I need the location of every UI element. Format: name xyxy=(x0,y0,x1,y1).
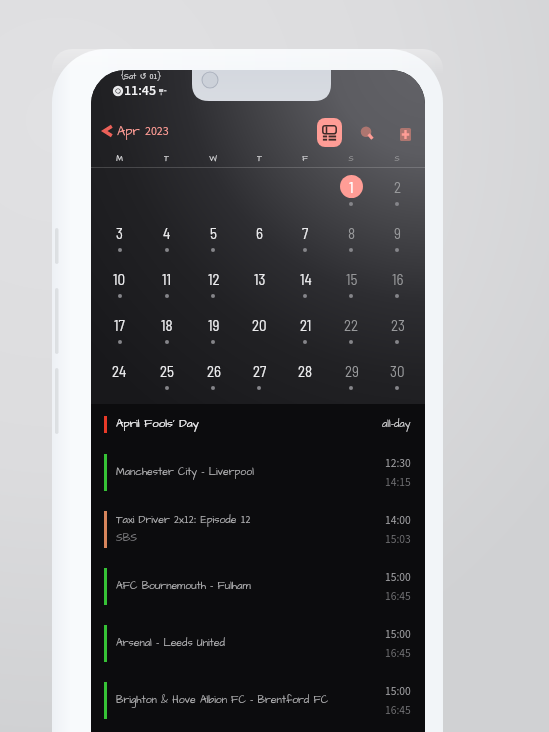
staticText: 27 xyxy=(253,362,267,380)
button[interactable]: 15 xyxy=(328,267,374,313)
button[interactable]: 16 xyxy=(374,267,420,313)
staticText: 8 xyxy=(348,224,356,242)
button[interactable]: 9 xyxy=(374,221,420,267)
staticText: 15:00 xyxy=(385,683,411,699)
staticText: 15:00 xyxy=(385,626,411,642)
button[interactable]: Apr 2023 xyxy=(99,118,173,144)
staticText: 1 xyxy=(349,178,354,196)
button[interactable]: 30 xyxy=(374,359,420,405)
staticText: S xyxy=(348,153,354,164)
staticText: 14 xyxy=(300,270,312,288)
staticText: 16:45 xyxy=(385,588,411,604)
staticText: 6 xyxy=(256,224,263,242)
button[interactable]: 28 xyxy=(282,359,328,405)
button[interactable]: 26 xyxy=(190,359,236,405)
button[interactable]: Change view xyxy=(317,118,342,147)
button[interactable]: April Fools' Day xyxy=(91,404,425,444)
staticText: SBS xyxy=(116,531,137,546)
button[interactable]: 22 xyxy=(328,313,374,359)
staticText: 29 xyxy=(345,362,359,380)
button[interactable]: 20 xyxy=(236,313,282,359)
staticText: 4 xyxy=(163,224,171,242)
staticText: 26 xyxy=(207,362,221,380)
button[interactable]: Taxi Driver 2x12: Episode 12 xyxy=(91,501,425,558)
button[interactable]: 21 xyxy=(282,313,328,359)
button[interactable]: 29 xyxy=(328,359,374,405)
staticText: 15:03 xyxy=(385,531,411,547)
button[interactable]: 7 xyxy=(282,221,328,267)
staticText: all-day xyxy=(382,417,411,432)
button[interactable]: 2 xyxy=(374,175,420,221)
staticText: 28 xyxy=(298,362,313,380)
staticText: 18 xyxy=(161,316,173,334)
button[interactable]: 8 xyxy=(328,221,374,267)
staticText: 12 xyxy=(208,270,220,288)
staticText: 23 xyxy=(391,316,405,334)
button[interactable]: Brighton & Hove Albion FC - Brentford FC xyxy=(91,672,425,729)
staticText: 11:45 xyxy=(124,81,156,101)
staticText: W xyxy=(209,153,217,164)
staticText: T xyxy=(257,153,262,164)
staticText: 12:30 xyxy=(385,455,411,471)
button[interactable] xyxy=(282,175,328,221)
button[interactable]: 27 xyxy=(236,359,282,405)
staticText: 17 xyxy=(114,316,125,334)
staticText: Manchester City - Liverpool xyxy=(116,465,254,480)
button[interactable]: Manchester City - Liverpool xyxy=(91,444,425,501)
button[interactable]: 18 xyxy=(143,313,190,359)
staticText: 14:00 xyxy=(385,512,411,528)
button[interactable]: 1 xyxy=(328,175,374,221)
staticText: Arsenal - Leeds United xyxy=(116,636,225,651)
staticText: 13 xyxy=(254,270,266,288)
button[interactable]: 14 xyxy=(282,267,328,313)
button[interactable]: Add event xyxy=(393,122,418,147)
button[interactable]: 6 xyxy=(236,221,282,267)
button[interactable]: 12 xyxy=(190,267,236,313)
staticText: 16:45 xyxy=(385,645,411,661)
staticText: 15:00 xyxy=(385,569,411,585)
staticText: 20 xyxy=(252,316,267,334)
button[interactable]: 4 xyxy=(143,221,190,267)
staticText: 22 xyxy=(344,316,359,334)
button[interactable]: 19 xyxy=(190,313,236,359)
staticText: 21 xyxy=(300,316,312,334)
staticText: 15 xyxy=(346,270,358,288)
staticText: {Sat ↺ 01} xyxy=(121,71,162,82)
button[interactable]: 17 xyxy=(96,313,143,359)
staticText: 11 xyxy=(162,270,171,288)
staticText: 2 xyxy=(394,178,402,196)
staticText: 16 xyxy=(392,270,404,288)
staticText: 25 xyxy=(160,362,174,380)
staticText: Brighton & Hove Albion FC - Brentford FC xyxy=(116,693,329,708)
button[interactable]: 11 xyxy=(143,267,190,313)
button[interactable]: 3 xyxy=(96,221,143,267)
staticText: 5 xyxy=(210,224,217,242)
staticText: F xyxy=(302,153,308,164)
staticText: 19 xyxy=(208,316,220,334)
button[interactable]: AFC Bournemouth - Fulham xyxy=(91,558,425,615)
staticText: 24 xyxy=(112,362,127,380)
staticText: Taxi Driver 2x12: Episode 12 xyxy=(116,513,251,528)
staticText: 14:15 xyxy=(385,474,411,490)
staticText: 10 xyxy=(113,270,126,288)
button[interactable]: 25 xyxy=(143,359,190,405)
button[interactable]: 10 xyxy=(96,267,143,313)
button[interactable]: 24 xyxy=(96,359,143,405)
staticText: M xyxy=(116,153,123,164)
button[interactable]: 23 xyxy=(374,313,420,359)
button[interactable] xyxy=(236,175,282,221)
staticText: Apr 2023 xyxy=(117,122,169,140)
button[interactable]: Arsenal - Leeds United xyxy=(91,615,425,672)
staticText: T xyxy=(164,153,169,164)
staticText: 3 xyxy=(116,224,123,242)
button[interactable]: Search xyxy=(355,121,379,145)
staticText: 9 xyxy=(394,224,401,242)
staticText: 30 xyxy=(390,362,405,380)
button[interactable]: 5 xyxy=(190,221,236,267)
button[interactable]: 13 xyxy=(236,267,282,313)
staticText: 7 xyxy=(302,224,309,242)
staticText: AFC Bournemouth - Fulham xyxy=(116,579,251,594)
